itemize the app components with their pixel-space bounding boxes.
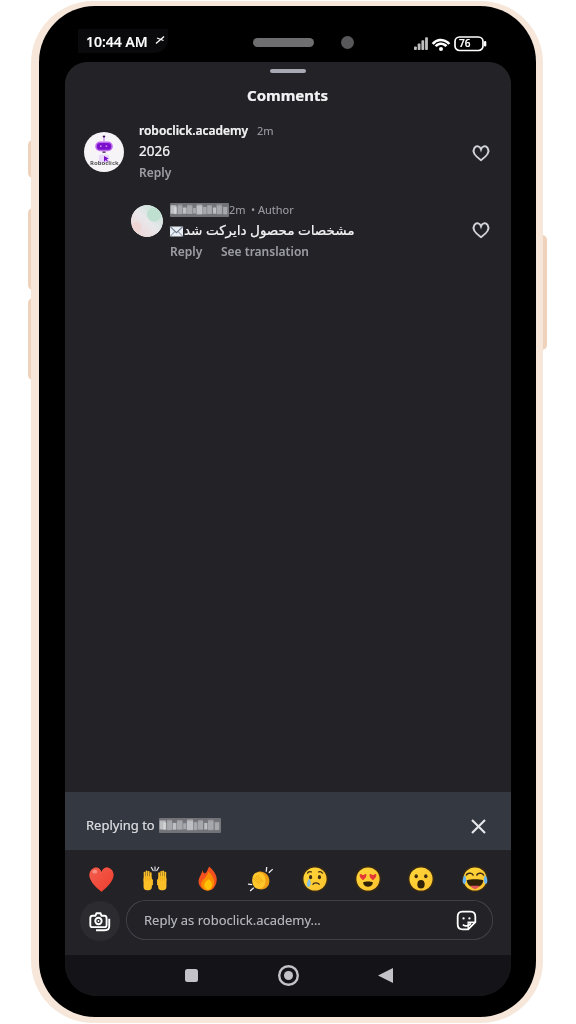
button[interactable]: Reply [170, 243, 203, 259]
button[interactable]: Clap reaction [244, 862, 278, 896]
button[interactable]: Home [265, 955, 311, 996]
button[interactable]: Heart reaction [84, 862, 118, 896]
button[interactable]: Camera [80, 901, 120, 941]
button[interactable]: Replying to [65, 792, 511, 850]
staticText: 10:44 AM [86, 32, 148, 51]
staticText: Roboclick [90, 159, 119, 167]
button[interactable]: Roboclick [65, 118, 511, 183]
button[interactable]: 2m [65, 192, 511, 256]
staticText: 2m [257, 123, 274, 138]
staticText: مشخصات محصول دایرکت شد [184, 221, 355, 239]
staticText: • Author [251, 202, 294, 217]
button[interactable]: Crying face reaction [298, 862, 332, 896]
button[interactable]: Laughing face reaction [458, 862, 492, 896]
button[interactable]: Back [362, 955, 408, 996]
staticText: 2026 [139, 142, 170, 160]
staticText: 2m [229, 202, 246, 217]
button[interactable]: Heart eyes reaction [351, 862, 385, 896]
button[interactable]: Reply as roboclick.academy… [126, 900, 493, 940]
staticText: Replying to [86, 816, 159, 834]
button[interactable]: Fire reaction [191, 862, 225, 896]
button[interactable]: Recents [168, 955, 214, 996]
button[interactable]: Reply [139, 164, 172, 180]
staticText: 76 [459, 36, 471, 50]
button[interactable]: Like [466, 215, 496, 245]
button[interactable]: See translation [221, 243, 309, 259]
button[interactable]: Raised hands reaction [138, 862, 172, 896]
button[interactable]: Like [466, 138, 496, 168]
button[interactable]: Close [456, 804, 500, 848]
staticText: roboclick.academy [139, 122, 249, 138]
staticText: Comments [247, 85, 329, 105]
button[interactable]: Stickers [451, 905, 481, 935]
button[interactable]: Surprised face reaction [404, 862, 438, 896]
staticText: Reply as roboclick.academy… [144, 911, 321, 929]
